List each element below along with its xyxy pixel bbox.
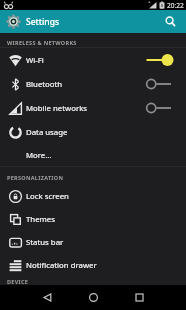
button[interactable] — [70, 285, 116, 310]
staticText: Mobile networks — [26, 103, 88, 114]
button[interactable] — [0, 10, 21, 33]
staticText: Themes — [26, 214, 55, 225]
button[interactable]: Mobile networks — [0, 96, 186, 120]
button[interactable] — [24, 285, 70, 310]
button[interactable]: Status bar — [0, 231, 186, 254]
staticText: Status bar — [26, 237, 64, 248]
staticText: Notification drawer — [26, 260, 97, 271]
button[interactable] — [116, 285, 162, 310]
staticText: More… — [26, 150, 52, 161]
button[interactable]: More… — [0, 144, 186, 166]
staticText: Wi-Fi — [26, 55, 44, 66]
button[interactable]: Wi-Fi — [0, 48, 186, 72]
button[interactable]: Notification drawer — [0, 254, 186, 277]
button[interactable] — [165, 10, 186, 33]
staticText: PERSONALIZATION — [7, 174, 64, 181]
button[interactable]: Bluetooth — [0, 72, 186, 96]
staticText: WIRELESS & NETWORKS — [7, 39, 77, 46]
staticText: Settings — [26, 16, 60, 28]
button[interactable] — [146, 77, 174, 91]
button[interactable] — [146, 101, 174, 115]
staticText: DEVICE — [7, 278, 29, 285]
button[interactable]: Data usage — [0, 120, 186, 144]
button[interactable]: Themes — [0, 208, 186, 231]
staticText: Bluetooth — [26, 79, 63, 90]
staticText: Lock screen — [26, 191, 69, 202]
button[interactable]: Lock screen — [0, 184, 186, 208]
button[interactable] — [146, 53, 174, 67]
staticText: 20:22 — [167, 1, 184, 10]
staticText: Data usage — [26, 127, 68, 138]
